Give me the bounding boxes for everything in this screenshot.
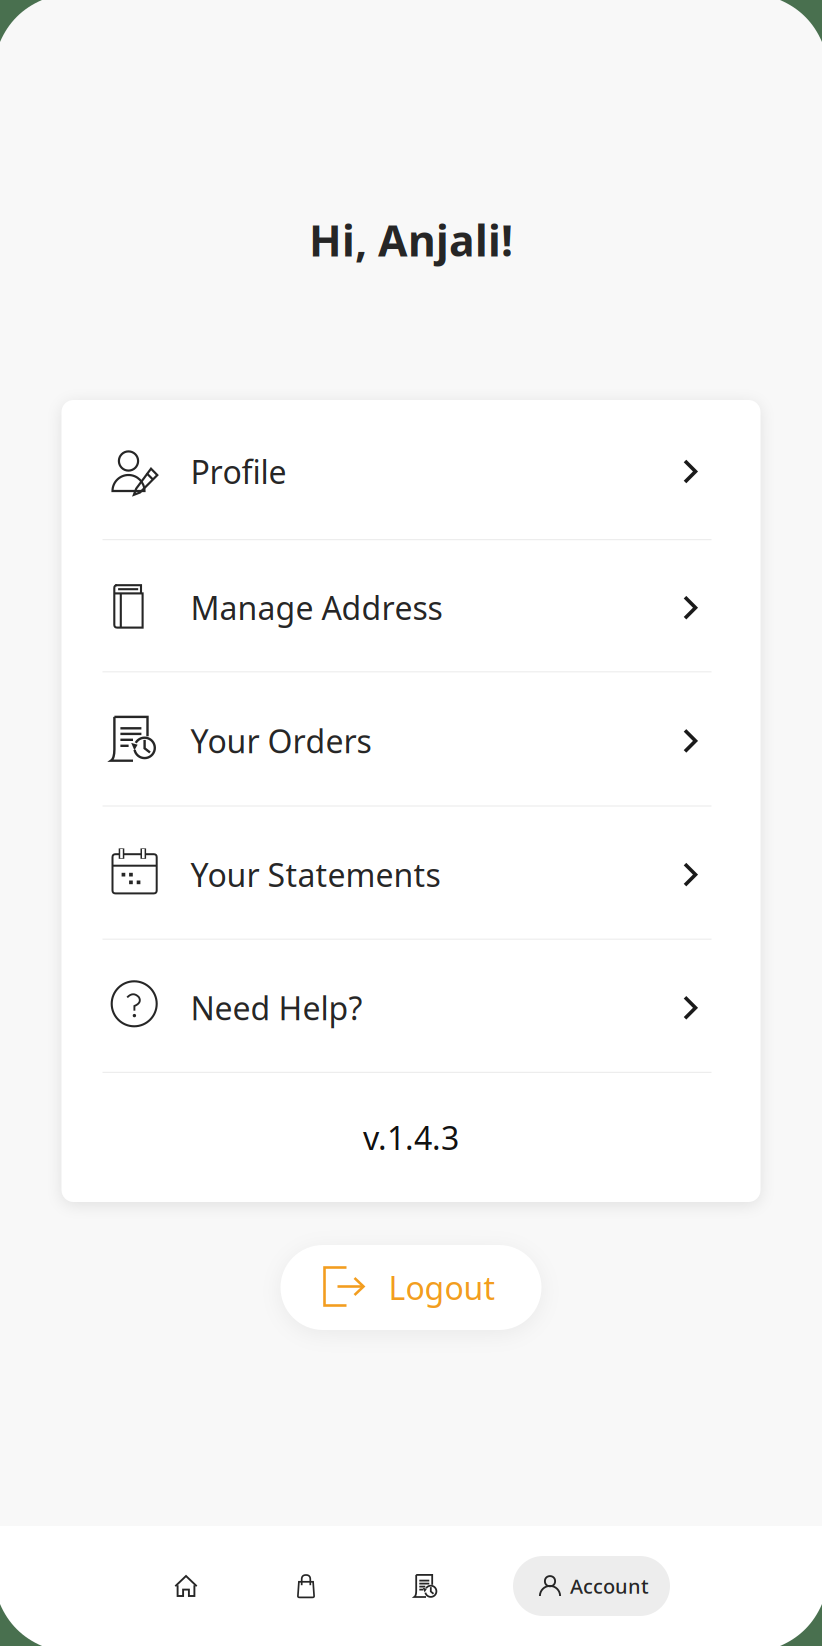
button[interactable]: Orders bbox=[366, 1526, 486, 1646]
staticText: Your Statements bbox=[190, 853, 440, 896]
staticText: Your Orders bbox=[190, 720, 371, 762]
staticText: Account bbox=[570, 1573, 649, 1599]
button[interactable]: Shop bbox=[246, 1526, 366, 1646]
staticText: Manage Address bbox=[190, 586, 442, 629]
button[interactable]: Manage Address bbox=[61, 540, 760, 671]
button[interactable]: Your Statements bbox=[61, 807, 760, 939]
staticText: Hi, Anjali! bbox=[309, 212, 513, 268]
staticText: v.1.4.3 bbox=[363, 1116, 459, 1159]
button[interactable]: Logout bbox=[280, 1245, 541, 1330]
button[interactable]: Your Orders bbox=[61, 672, 760, 805]
staticText: Need Help? bbox=[190, 987, 362, 1029]
button[interactable]: Need Help? bbox=[61, 940, 760, 1072]
button[interactable]: Home bbox=[126, 1526, 246, 1646]
button[interactable]: Account bbox=[513, 1556, 670, 1616]
staticText: Profile bbox=[190, 450, 286, 493]
button[interactable]: Profile bbox=[61, 400, 760, 539]
staticText: Logout bbox=[388, 1266, 495, 1309]
